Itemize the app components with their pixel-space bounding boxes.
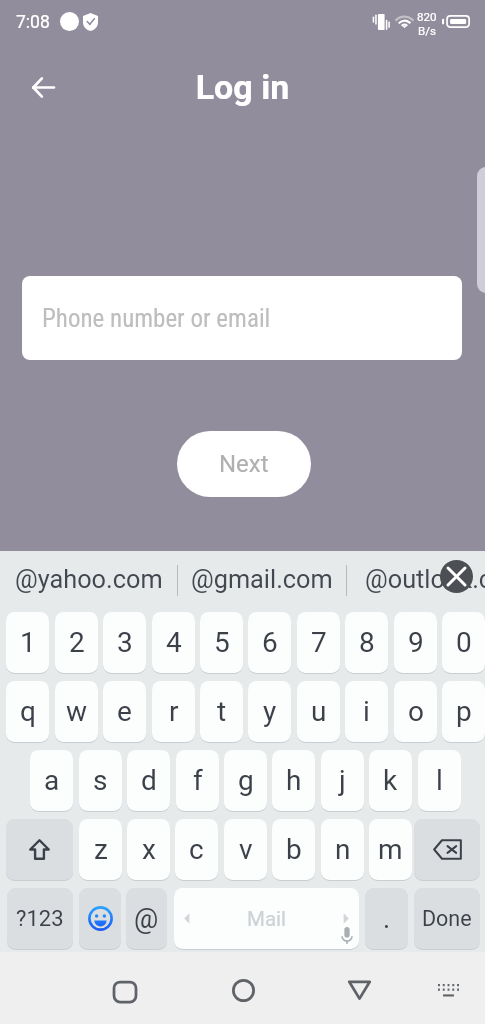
button[interactable]: u [297,681,340,742]
button[interactable]: 9 [394,612,437,673]
staticText: v [239,833,253,866]
button[interactable]: s [79,750,122,811]
button[interactable]: l [418,750,461,811]
button[interactable]: e [103,681,146,742]
button[interactable]: z [79,819,122,880]
staticText: @ [134,903,159,935]
staticText: h [286,764,302,797]
button[interactable]: ?123 [7,888,73,949]
staticText: z [94,833,108,866]
staticText: 820 [417,10,437,24]
staticText: 3 [117,626,133,659]
button[interactable]: Back [331,962,387,1018]
staticText: k [383,764,398,797]
button[interactable]: @yahoo.com [0,551,177,609]
button[interactable]: y [248,681,291,742]
staticText: g [238,764,254,797]
button[interactable]: Next [177,431,311,497]
button[interactable]: x [127,819,170,880]
staticText: u [311,695,327,728]
staticText: b [286,833,302,866]
staticText: Phone number or email [42,304,271,333]
button[interactable]: j [321,750,364,811]
button[interactable]: k [369,750,412,811]
button[interactable]: 4 [152,612,195,673]
staticText: 8 [359,626,375,659]
button[interactable]: o [394,681,437,742]
button[interactable]: 3 [103,612,146,673]
staticText: j [339,764,346,797]
button[interactable]: 0 [442,612,485,673]
staticText: Done [422,906,472,931]
staticText: Log in [0,67,485,107]
staticText: @outlook.com [365,565,485,595]
staticText: B/s [418,24,436,38]
button[interactable]: @gmail.com [177,551,346,609]
staticText: c [189,833,204,866]
button[interactable]: Emoji [79,888,121,949]
staticText: m [378,833,403,866]
button[interactable]: Backspace [414,819,480,880]
button[interactable]: . [365,888,408,949]
staticText: r [169,695,179,728]
button[interactable]: 6 [248,612,291,673]
staticText: 7 [311,626,327,659]
staticText: 6 [262,626,278,659]
staticText: a [44,764,60,797]
button[interactable]: Switch keyboard [420,962,476,1018]
staticText: 9 [408,626,424,659]
button[interactable]: Home [215,962,271,1018]
button[interactable]: q [6,681,49,742]
button[interactable]: 1 [6,612,49,673]
button[interactable]: a [30,750,73,811]
staticText: s [93,764,108,797]
button[interactable]: @outlook.com [346,551,485,609]
button[interactable]: Space [174,888,359,949]
button[interactable]: g [224,750,267,811]
staticText: 7:08 [16,12,50,33]
staticText: @yahoo.com [15,565,163,595]
button[interactable]: v [224,819,267,880]
button[interactable]: 7 [297,612,340,673]
staticText: f [193,764,203,797]
staticText: 0 [456,626,472,659]
staticText: d [141,764,157,797]
staticText: q [20,695,36,728]
staticText: t [217,695,227,728]
staticText: 5 [214,626,230,659]
button[interactable]: i [345,681,388,742]
button[interactable]: @ [126,888,167,949]
staticText: ?123 [16,906,64,932]
button[interactable]: Close suggestions [440,560,473,593]
button[interactable]: Back [22,66,64,108]
button[interactable]: r [152,681,195,742]
button[interactable]: w [55,681,98,742]
staticText: Next [219,450,269,478]
button[interactable]: m [369,819,412,880]
staticText: w [66,695,88,728]
staticText: 2 [69,626,85,659]
button[interactable]: Recents [97,962,153,1018]
staticText: . [383,903,391,935]
button[interactable]: b [272,819,315,880]
button[interactable]: c [175,819,218,880]
button[interactable]: 8 [345,612,388,673]
button[interactable]: f [176,750,219,811]
staticText: l [436,764,443,797]
button[interactable]: Phone number or email [22,276,462,360]
staticText: @gmail.com [191,565,333,595]
button[interactable]: h [272,750,315,811]
button[interactable]: 5 [200,612,243,673]
staticText: 1 [20,626,36,659]
staticText: x [142,833,156,866]
button[interactable]: Done [414,888,480,949]
button[interactable]: Shift [6,819,73,880]
button[interactable]: 2 [55,612,98,673]
button[interactable]: t [200,681,243,742]
button[interactable]: n [321,819,364,880]
button[interactable]: p [442,681,485,742]
staticText: p [456,695,472,728]
staticText: i [363,695,370,728]
button[interactable]: d [127,750,170,811]
staticText: 4 [166,626,182,659]
